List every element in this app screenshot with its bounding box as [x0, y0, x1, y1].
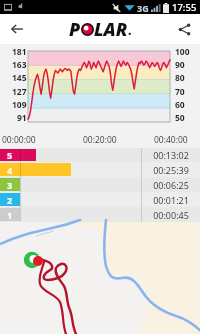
staticText: 127 — [12, 86, 27, 98]
staticText: 5 — [7, 149, 13, 161]
staticText: 181 — [12, 46, 27, 58]
staticText: 90 — [175, 59, 185, 71]
staticText: P — [69, 17, 81, 42]
staticText: 70 — [175, 86, 185, 98]
staticText: 100 — [175, 46, 190, 58]
staticText: 00:06:25 — [153, 179, 189, 191]
staticText: 145 — [12, 72, 27, 84]
staticText: 00:00:45 — [153, 209, 189, 221]
staticText: 50 — [175, 112, 185, 124]
staticText: 2 — [7, 194, 13, 206]
staticText: 60 — [175, 99, 185, 111]
button[interactable]: Share — [168, 14, 200, 44]
staticText: LAR — [94, 17, 128, 42]
staticText: 4 — [7, 164, 13, 176]
staticText: 00:20:00 — [83, 134, 117, 146]
staticText: 00:01:21 — [153, 194, 189, 206]
staticText: 80 — [175, 72, 185, 84]
staticText: 3G — [137, 2, 149, 14]
button[interactable]: 5 — [0, 148, 200, 162]
staticText: 00:13:02 — [153, 149, 189, 161]
button[interactable]: Back — [0, 14, 34, 44]
staticText: 1 — [7, 209, 13, 221]
staticText: 00:40:00 — [154, 134, 188, 146]
button[interactable]: 4 — [0, 162, 200, 177]
staticText: 00:00:00 — [2, 134, 36, 146]
staticText: 17:55 — [172, 1, 197, 14]
button[interactable]: Route map — [0, 222, 200, 334]
button[interactable]: 1 — [0, 207, 200, 222]
button[interactable]: 3 — [0, 177, 200, 192]
staticText: . — [128, 22, 132, 38]
staticText: 91 — [17, 112, 27, 124]
button[interactable]: 2 — [0, 192, 200, 207]
staticText: 00:25:39 — [153, 164, 189, 176]
staticText: 163 — [12, 59, 27, 71]
staticText: 109 — [12, 99, 27, 111]
staticText: 3 — [7, 179, 13, 191]
